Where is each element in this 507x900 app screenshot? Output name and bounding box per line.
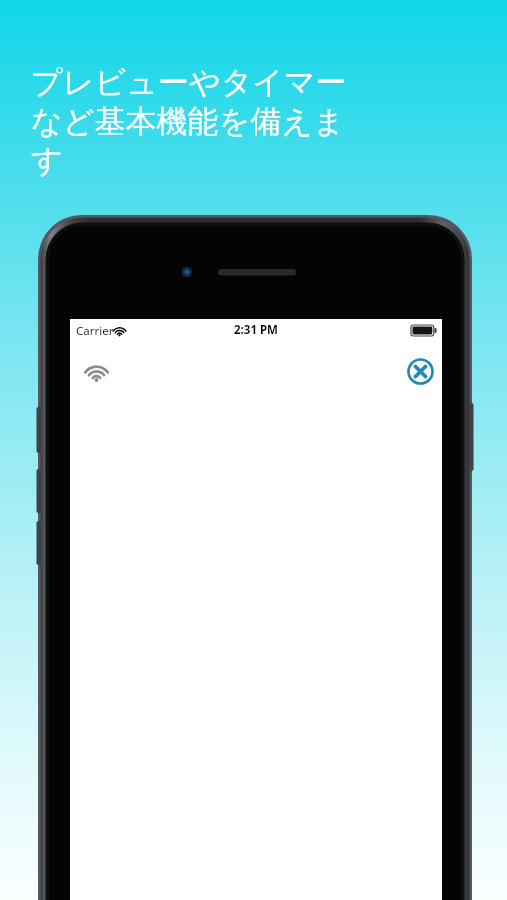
staticText: 2:31 PM <box>234 322 278 338</box>
staticText: プレビューやタイマー <box>31 63 347 102</box>
button[interactable]: Wi-Fi <box>74 349 118 393</box>
button[interactable]: Close <box>398 349 442 393</box>
staticText: Carrier <box>76 323 114 339</box>
staticText: など基本機能を備えま <box>31 102 345 141</box>
staticText: す <box>31 141 63 180</box>
